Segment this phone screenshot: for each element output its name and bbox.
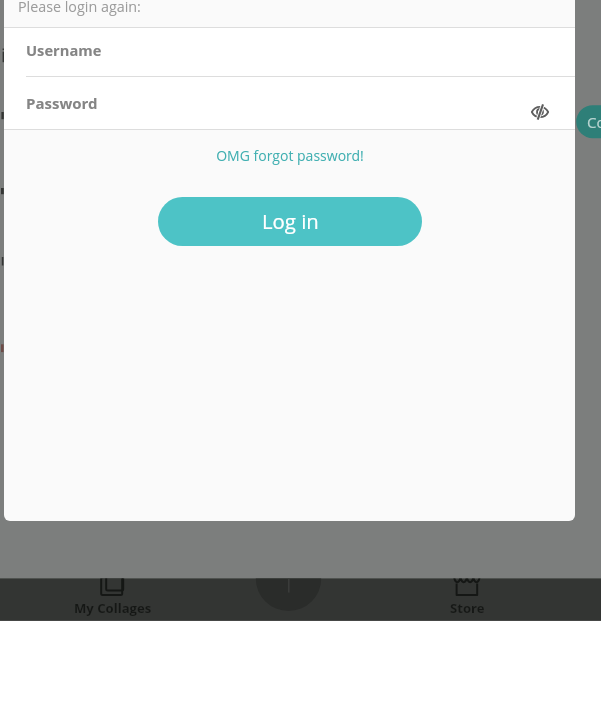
staticText: Password: [26, 93, 98, 113]
staticText: OMG forgot password!: [216, 146, 364, 165]
staticText: Store: [450, 599, 485, 617]
button[interactable]: Password: [4, 77, 575, 129]
staticText: Continue: [587, 112, 601, 132]
button[interactable]: Continue: [576, 105, 601, 138]
button[interactable]: OMG forgot password!: [4, 135, 575, 180]
button[interactable]: Store: [360, 578, 601, 620]
staticText: Username: [26, 40, 102, 60]
button[interactable]: New collage: [256, 578, 322, 612]
staticText: Please login again:: [18, 0, 141, 16]
staticText: Log in: [262, 207, 319, 235]
button[interactable]: Log in: [158, 197, 422, 246]
button[interactable]: Username: [4, 28, 575, 77]
button[interactable]: My Collages: [0, 578, 232, 620]
staticText: My Collages: [74, 599, 152, 617]
button[interactable]: Show password: [524, 96, 556, 128]
